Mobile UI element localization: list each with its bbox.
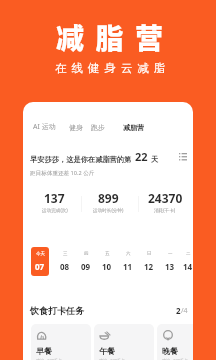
staticText: /4 <box>181 306 188 316</box>
staticText: 运动完成(次) <box>42 207 68 213</box>
staticText: 健身 <box>69 123 83 132</box>
staticText: 08 <box>60 261 70 272</box>
staticText: 07 <box>35 261 45 272</box>
button[interactable]: 晚餐 <box>157 324 193 360</box>
button[interactable]: 日 <box>140 247 158 276</box>
button[interactable]: 跑步 <box>89 120 107 135</box>
staticText: 13 <box>165 261 175 272</box>
button[interactable]: 减脂营 <box>121 120 146 135</box>
staticText: 建议 · 240千卡 <box>36 358 63 360</box>
staticText: 10 <box>102 261 112 272</box>
staticText: 距目标体重还差 10.2 公斤 <box>30 169 95 177</box>
staticText: 减脂营 <box>56 17 175 58</box>
button[interactable]: 午餐 <box>94 324 154 360</box>
staticText: 晚餐 <box>162 346 178 356</box>
staticText: 消耗(千卡) <box>154 207 176 213</box>
staticText: AI 运动 <box>33 122 56 132</box>
staticText: 三 <box>63 251 68 257</box>
staticText: 14 <box>183 261 193 272</box>
button[interactable]: 二 <box>180 247 193 276</box>
staticText: 天 <box>151 155 159 164</box>
staticText: 11 <box>123 261 133 272</box>
button[interactable]: 四 <box>77 247 95 276</box>
button[interactable]: 今天 <box>31 247 49 276</box>
staticText: 早安莎莎，这是你在减脂营的第 <box>30 155 132 164</box>
staticText: 12 <box>144 261 154 272</box>
staticText: 五 <box>105 251 110 257</box>
button[interactable]: Records <box>176 150 190 164</box>
staticText: 09 <box>81 261 91 272</box>
button[interactable]: AI 运动 <box>31 119 58 135</box>
staticText: 日 <box>147 251 152 257</box>
button[interactable]: 五 <box>98 247 116 276</box>
staticText: 早餐 <box>36 346 52 356</box>
staticText: 22 <box>135 149 148 164</box>
staticText: 137 <box>44 190 65 206</box>
button[interactable]: 三 <box>56 247 74 276</box>
staticText: 在线健身云减脂 <box>55 61 171 75</box>
staticText: 跑步 <box>91 123 105 132</box>
button[interactable]: 一 <box>161 247 179 276</box>
staticText: 减脂营 <box>123 123 144 132</box>
staticText: 二 <box>186 251 191 257</box>
staticText: 运动时长(分钟) <box>93 207 124 213</box>
staticText: 午餐 <box>99 346 115 356</box>
staticText: 六 <box>126 251 131 257</box>
staticText: 2 <box>176 305 181 316</box>
staticText: 建议 · 240千卡 <box>162 358 189 360</box>
staticText: 一 <box>168 251 173 257</box>
staticText: 饮食打卡任务 <box>30 305 84 316</box>
button[interactable]: 六 <box>119 247 137 276</box>
staticText: 今天 <box>36 251 45 257</box>
staticText: 24370 <box>148 190 183 206</box>
staticText: 四 <box>84 251 89 257</box>
button[interactable]: 健身 <box>67 120 85 135</box>
staticText: 899 <box>98 190 119 206</box>
staticText: 建议 · 240千卡 <box>99 358 126 360</box>
button[interactable]: 早餐 <box>31 324 91 360</box>
